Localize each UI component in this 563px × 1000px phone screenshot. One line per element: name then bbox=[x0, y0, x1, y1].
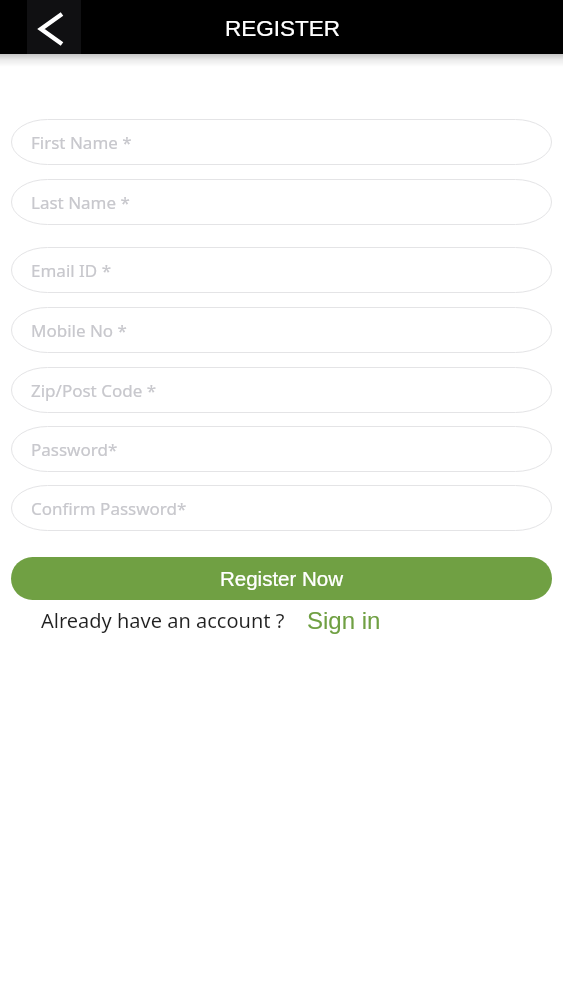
button[interactable]: Zip/Post Code * bbox=[11, 367, 552, 413]
button[interactable]: Last Name * bbox=[11, 179, 552, 225]
staticText: REGISTER bbox=[225, 16, 341, 41]
button[interactable]: Password* bbox=[11, 426, 552, 472]
button[interactable]: Confirm Password* bbox=[11, 485, 552, 531]
button[interactable]: Email ID * bbox=[11, 247, 552, 293]
staticText: Last Name * bbox=[31, 191, 130, 214]
button[interactable]: Register Now bbox=[11, 557, 552, 600]
button[interactable]: First Name * bbox=[11, 119, 552, 165]
staticText: Password* bbox=[31, 438, 118, 461]
staticText: Zip/Post Code * bbox=[31, 379, 157, 402]
button[interactable]: Mobile No * bbox=[11, 307, 552, 353]
staticText: Mobile No * bbox=[31, 319, 127, 342]
staticText: Confirm Password* bbox=[31, 497, 187, 520]
staticText: Sign in bbox=[307, 607, 381, 634]
staticText: Email ID * bbox=[31, 259, 112, 282]
button[interactable]: Sign in bbox=[307, 607, 381, 634]
staticText: Register Now bbox=[220, 567, 344, 590]
staticText: Already have an account ? bbox=[41, 607, 285, 634]
button[interactable]: Back bbox=[27, 0, 81, 54]
staticText: First Name * bbox=[31, 131, 132, 154]
